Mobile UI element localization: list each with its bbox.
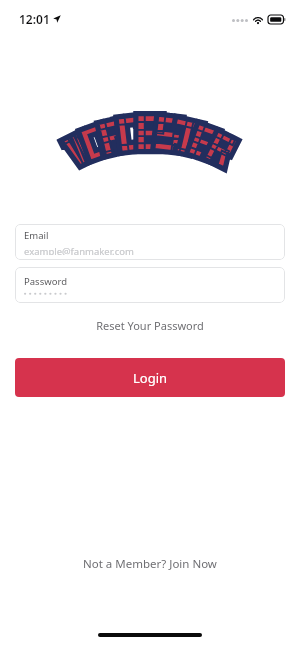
staticText: Reset Your Password [96, 318, 204, 333]
other: Worcester logo [32, 88, 268, 150]
other: Home indicator [98, 633, 202, 637]
button[interactable]: Login [15, 358, 285, 397]
staticText: example@fanmaker.com [24, 245, 134, 255]
staticText: Password [24, 275, 67, 288]
button[interactable]: Password [15, 267, 285, 303]
button[interactable]: Reset Your Password [0, 313, 300, 338]
staticText: Login [133, 369, 168, 387]
staticText: 12:01 [19, 11, 50, 27]
button[interactable]: Email [15, 224, 285, 260]
staticText: Not a Member? Join Now [83, 556, 217, 572]
button[interactable]: Not a Member? Join Now [0, 550, 300, 578]
staticText: Email [24, 229, 49, 242]
